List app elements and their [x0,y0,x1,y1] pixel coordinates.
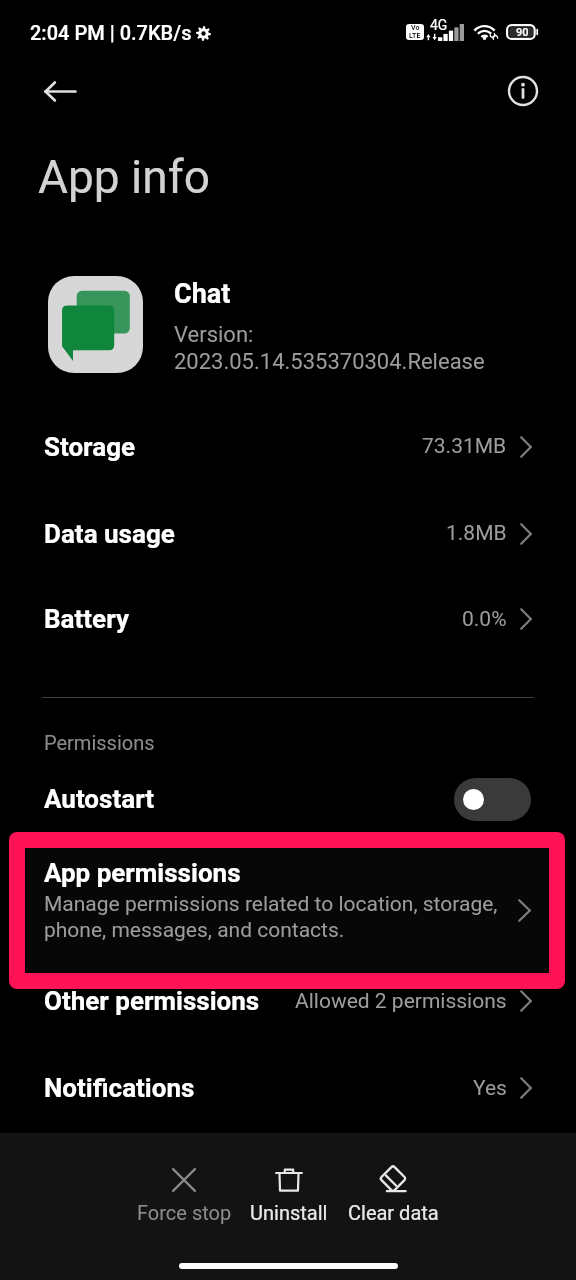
staticText: Version: 2023.05.14.535370304.Release [174,322,485,374]
staticText: 0.0% [462,607,507,632]
button[interactable]: App permissions [9,832,565,989]
staticText: Data usage [44,519,175,549]
staticText: Vo [411,24,420,32]
staticText: Yes [473,1076,507,1101]
button[interactable]: Storage [0,403,576,490]
button[interactable]: Notifications [0,1049,576,1127]
button[interactable]: Autostart [0,760,576,838]
button[interactable]: Uninstall [241,1166,337,1224]
staticText: 90 [516,26,529,39]
staticText: 73.31MB [422,434,507,459]
staticText: Other permissions [44,986,260,1016]
staticText: App permissions [44,858,241,888]
button[interactable]: Back [33,67,87,115]
staticText: Force stop [137,1201,232,1224]
staticText: Storage [44,432,136,462]
button[interactable]: Autostart toggle, off [454,778,531,821]
staticText: Permissions [44,731,155,754]
staticText: Uninstall [250,1201,328,1224]
staticText: Battery [44,604,129,634]
staticText: 2:04 PM | 0.7KB/s [30,21,192,44]
button[interactable]: Clear data [345,1166,441,1224]
staticText: Chat [174,278,231,310]
staticText: Manage permissions related to location, … [44,892,498,942]
staticText: Clear data [348,1201,439,1224]
button[interactable]: Other permissions [0,962,576,1040]
button[interactable]: About this app [499,67,547,115]
staticText: Notifications [44,1073,195,1103]
button[interactable]: Data usage [0,490,576,577]
button[interactable]: Battery [0,576,576,662]
staticText: 4G [430,17,448,33]
staticText: Allowed 2 permissions [295,989,507,1014]
staticText: LTE [409,32,421,40]
button[interactable]: Force stop [136,1166,232,1224]
staticText: App info [38,150,210,204]
staticText: Autostart [44,784,155,814]
staticText: 1.8MB [446,521,507,546]
